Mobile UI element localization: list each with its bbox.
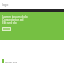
button[interactable]: Learn more	[2, 27, 11, 31]
staticText: Consectetur ad	[2, 18, 24, 21]
staticText: footer link	[5, 60, 18, 63]
staticText: logo	[2, 3, 9, 7]
button[interactable]: logo	[0, 0, 64, 9]
staticText: Elit sed do	[2, 21, 17, 24]
staticText: Lorem ipsum dolo	[2, 15, 28, 18]
staticText: Learn more	[2, 28, 11, 31]
